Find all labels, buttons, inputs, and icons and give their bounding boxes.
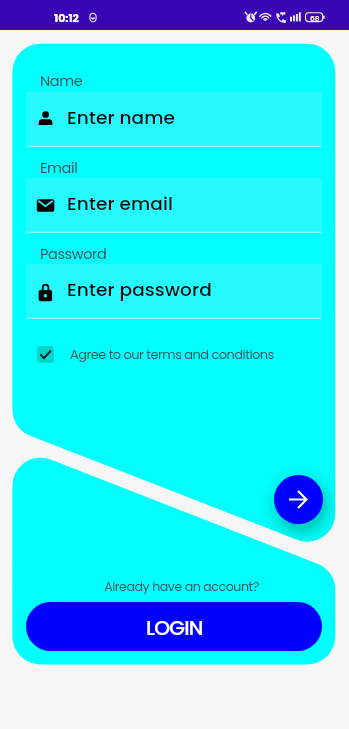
staticText: 68 [310, 13, 320, 22]
staticText: Enter password [67, 277, 212, 303]
staticText: Email [40, 158, 78, 178]
button[interactable]: Agree to our terms and conditions [37, 341, 274, 367]
staticText: Password [40, 244, 107, 264]
staticText: Enter email [67, 191, 173, 217]
button[interactable]: Enter email [26, 178, 322, 233]
button[interactable]: Enter name [26, 92, 322, 147]
button[interactable]: LOGIN [26, 602, 322, 651]
button[interactable]: Enter password [26, 264, 322, 319]
staticText: Name [40, 71, 83, 91]
staticText: Already have an account? [104, 578, 259, 596]
staticText: LOGIN [146, 614, 203, 642]
staticText: Agree to our terms and conditions [70, 345, 274, 363]
staticText: 10:12 [54, 10, 79, 25]
staticText: Enter name [67, 105, 176, 131]
button[interactable]: Next [274, 475, 323, 524]
